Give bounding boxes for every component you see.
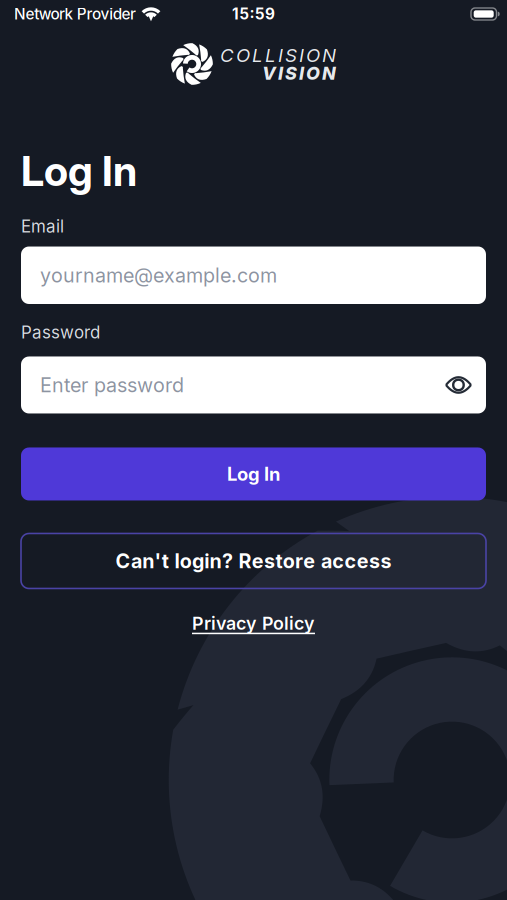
staticText: Can't login? Restore access: [116, 549, 391, 573]
staticText: Password: [21, 322, 100, 342]
staticText: Network Provider: [14, 5, 136, 23]
staticText: Privacy Policy: [192, 612, 315, 634]
staticText: Enter password: [40, 373, 184, 397]
staticText: Log In: [21, 146, 137, 196]
staticText: Email: [21, 216, 64, 236]
staticText: Log In: [227, 463, 280, 485]
staticText: VISION: [262, 62, 336, 84]
staticText: 15:59: [232, 5, 275, 23]
staticText: yourname@example.com: [40, 263, 277, 287]
staticText: COLLISION: [220, 44, 336, 66]
